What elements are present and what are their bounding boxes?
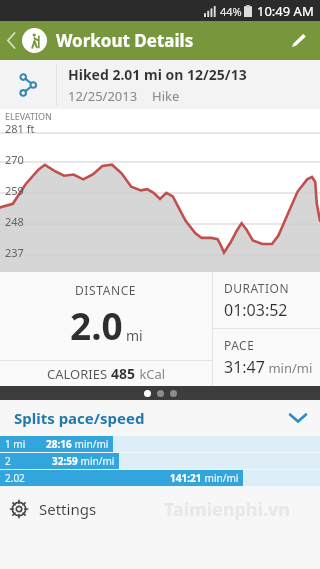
staticText: CALORIES [47, 365, 111, 383]
staticText: Taimienphi.vn [164, 497, 290, 522]
staticText: Splits pace/speed [14, 408, 145, 428]
staticText: 248 [5, 214, 24, 229]
staticText: Hike [152, 87, 180, 105]
button[interactable]: Edit [276, 21, 320, 60]
staticText: 259 [5, 183, 24, 198]
staticText: 01:03:52 [224, 299, 288, 321]
staticText: 141:21 [170, 471, 202, 485]
staticText: 270 [5, 152, 24, 167]
staticText: Workout Details [56, 29, 194, 52]
staticText: 1 mi [5, 437, 26, 451]
staticText: 32:59 [52, 454, 78, 468]
staticText: 31:47 [224, 356, 265, 378]
button[interactable]: Settings [0, 489, 97, 529]
staticText: 44% [220, 4, 242, 19]
staticText: 28:16 [46, 437, 72, 451]
button[interactable]: 1 mi [0, 436, 320, 452]
staticText: mi [126, 326, 143, 345]
staticText: 237 [5, 245, 24, 260]
staticText: ELEVATION [5, 110, 52, 122]
staticText: Settings [39, 499, 97, 519]
staticText: 12/25/2013 [68, 87, 138, 105]
staticText: 10:49 AM [257, 2, 314, 20]
staticText: 281 ft [5, 121, 35, 136]
button[interactable]: 2.02 [0, 470, 320, 486]
button[interactable]: Splits pace/speed [0, 400, 320, 436]
staticText: 2.0 [70, 300, 123, 350]
staticText: min/mi [202, 471, 239, 485]
staticText: min/mi [265, 359, 313, 377]
button[interactable]: Back [0, 21, 22, 60]
staticText: 2.02 [5, 471, 25, 485]
button[interactable]: 2 [0, 453, 320, 469]
staticText: 2 [5, 454, 11, 468]
staticText: DISTANCE [75, 282, 137, 298]
staticText: 485 [111, 364, 136, 383]
staticText: min/mi [78, 454, 115, 468]
staticText: kCal [136, 365, 166, 383]
staticText: PACE [224, 337, 255, 353]
staticText: Hiked 2.01 mi on 12/25/13 [68, 65, 247, 84]
staticText: min/mi [72, 437, 109, 451]
staticText: DURATION [224, 280, 290, 296]
